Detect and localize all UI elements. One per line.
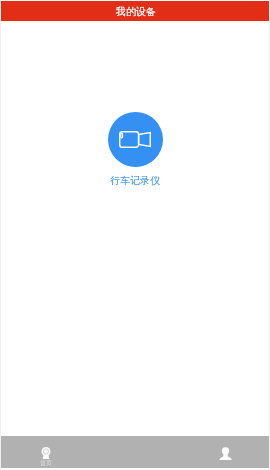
button[interactable]: 我的设备 [0, 1, 270, 21]
staticText: 首页 [40, 459, 52, 467]
button[interactable]: 行车记录仪 [108, 112, 163, 167]
button[interactable]: 我的 [180, 436, 270, 468]
staticText: 行车记录仪 [110, 174, 160, 187]
staticText: 我的设备 [116, 5, 156, 18]
button[interactable]: 首页 [0, 436, 90, 468]
